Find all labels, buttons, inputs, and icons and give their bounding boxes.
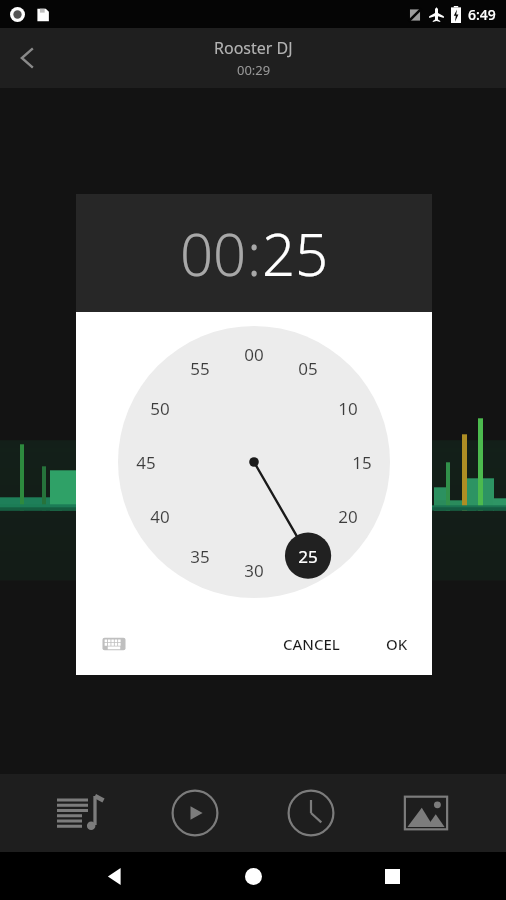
staticText: 00 (244, 343, 264, 366)
staticText: 00:29 (237, 61, 271, 79)
button[interactable]: Switch to text input (94, 624, 134, 664)
button[interactable]: Back (0, 30, 56, 86)
staticText: 20 (338, 505, 358, 528)
staticText: 45 (136, 451, 156, 474)
button[interactable]: OK (376, 626, 418, 662)
staticText: 00 (180, 214, 247, 293)
staticText: Rooster DJ (214, 37, 293, 59)
button[interactable]: Home (229, 852, 277, 900)
button[interactable]: 00 (180, 214, 247, 293)
staticText: 6:49 (468, 5, 496, 24)
staticText: 30 (244, 559, 264, 582)
staticText: 35 (190, 545, 210, 568)
staticText: : (247, 214, 262, 293)
button[interactable]: Recent apps (368, 852, 416, 900)
staticText: 15 (352, 451, 372, 474)
staticText: 25 (298, 545, 318, 568)
staticText: OK (386, 634, 408, 654)
button[interactable]: Timer (275, 777, 347, 849)
button[interactable]: Gallery (390, 777, 462, 849)
button[interactable]: 25 (262, 214, 329, 293)
staticText: CANCEL (283, 634, 340, 654)
staticText: 55 (190, 357, 210, 380)
button[interactable]: Play (159, 777, 231, 849)
button[interactable]: Back (91, 852, 139, 900)
staticText: 40 (150, 505, 170, 528)
button[interactable]: CANCEL (273, 626, 350, 662)
staticText: 05 (298, 357, 318, 380)
button[interactable]: Playlist (44, 777, 116, 849)
staticText: 10 (338, 397, 358, 420)
staticText: 50 (150, 397, 170, 420)
staticText: 25 (262, 214, 329, 293)
